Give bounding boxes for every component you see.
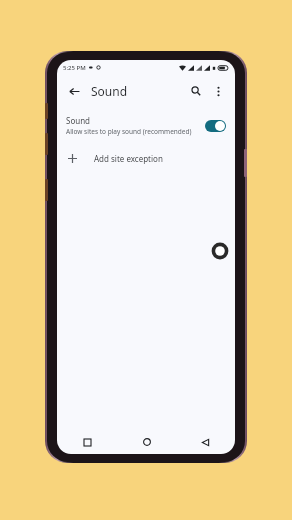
staticText: Add site exception bbox=[94, 153, 163, 164]
button[interactable]: Back bbox=[176, 430, 235, 454]
staticText: Sound bbox=[66, 115, 91, 126]
staticText: Allow sites to play sound (recommended) bbox=[66, 127, 192, 136]
staticText: Sound bbox=[91, 83, 128, 99]
button[interactable]: Back bbox=[65, 82, 83, 100]
button[interactable]: Add site exception bbox=[57, 148, 235, 168]
button[interactable]: Recent apps bbox=[57, 430, 117, 454]
staticText: 5:25 PM bbox=[63, 64, 86, 72]
button[interactable]: Sound bbox=[57, 113, 235, 138]
button[interactable]: Search bbox=[187, 82, 205, 100]
button[interactable]: Sound toggle, on bbox=[205, 120, 226, 132]
button[interactable]: Home bbox=[117, 430, 176, 454]
button[interactable]: More options bbox=[209, 82, 227, 100]
